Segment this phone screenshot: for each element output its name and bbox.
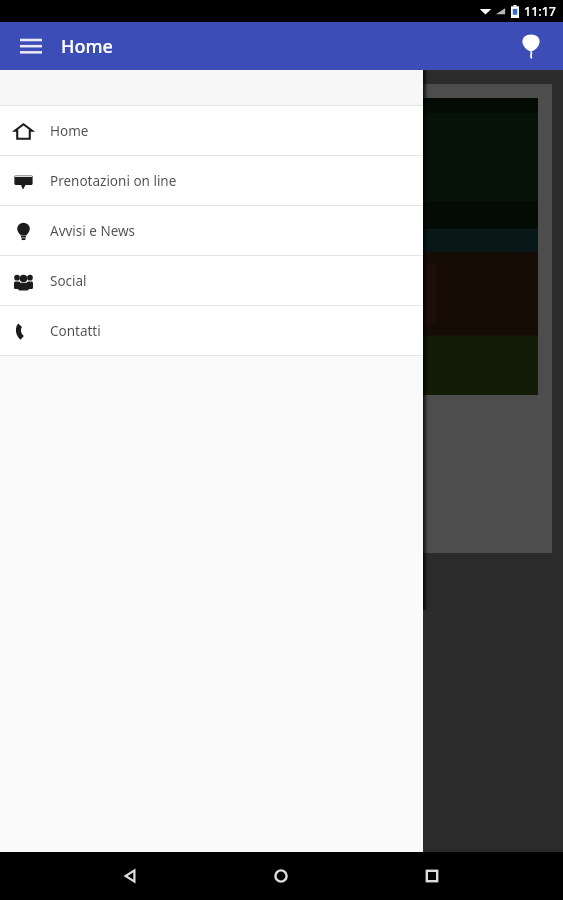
button[interactable]: Prenotazioni on line — [0, 156, 423, 205]
staticText: 11:17 — [524, 3, 557, 20]
button[interactable]: Contatti — [0, 306, 423, 355]
staticText: Social — [50, 272, 87, 290]
staticText: Home — [61, 34, 113, 59]
staticText: Home — [50, 122, 89, 140]
button[interactable]: Social — [0, 256, 423, 305]
button[interactable]: Back — [110, 856, 150, 896]
button[interactable]: Avvisi e News — [0, 206, 423, 255]
staticText: Contatti — [50, 322, 101, 340]
staticText: Prenotazioni on line — [50, 172, 177, 190]
button[interactable]: Recent apps — [412, 856, 452, 896]
button[interactable]: Home — [0, 106, 423, 155]
button[interactable]: Balloon — [509, 24, 553, 68]
button[interactable]: Home — [261, 856, 301, 896]
staticText: Avvisi e News — [50, 222, 136, 240]
button[interactable]: Open navigation drawer — [10, 25, 52, 67]
